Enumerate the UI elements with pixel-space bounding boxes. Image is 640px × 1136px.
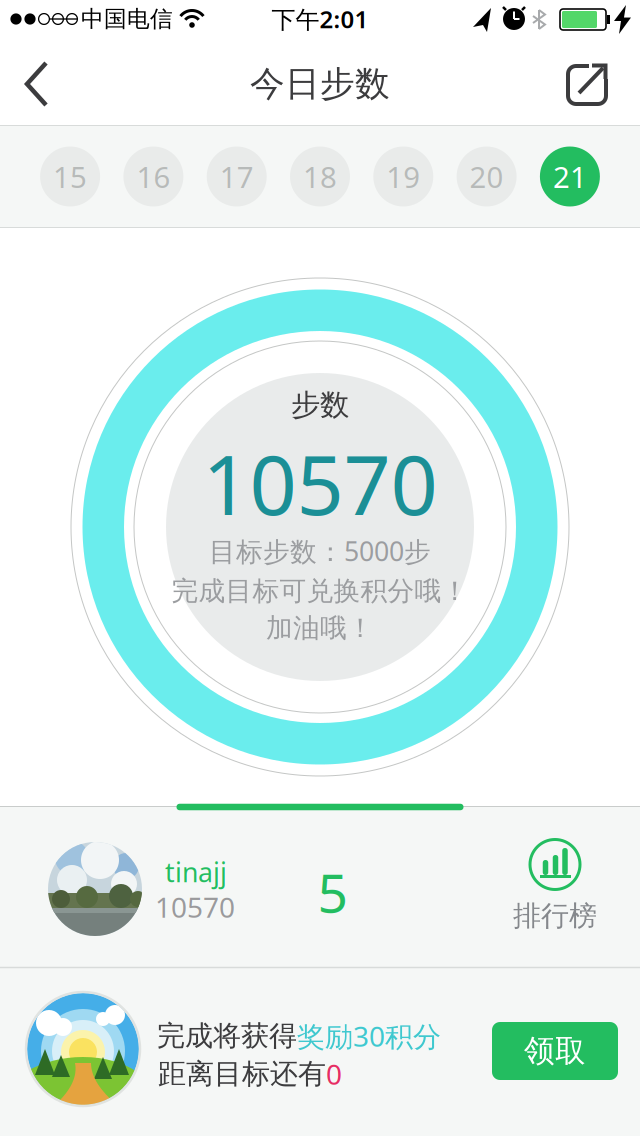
button[interactable]: Share <box>557 54 617 116</box>
staticText: 奖励30积分 <box>297 1017 441 1055</box>
staticText: 10570 <box>202 428 437 538</box>
staticText: 下午2:01 <box>271 3 368 35</box>
button[interactable]: Back <box>0 40 70 126</box>
staticText: 完成目标可兑换积分哦！ <box>171 575 468 607</box>
staticText: 完成将获得 <box>157 1019 297 1053</box>
staticText: 15 <box>53 157 87 196</box>
button[interactable]: 19 <box>373 146 433 206</box>
staticText: 今日步数 <box>250 63 390 105</box>
button[interactable]: 兑换积分 <box>176 804 463 810</box>
staticText: 19 <box>386 157 420 196</box>
button[interactable]: 18 <box>290 146 350 206</box>
staticText: 排行榜 <box>513 899 597 933</box>
staticText: 5 <box>317 857 348 927</box>
button[interactable]: 20 <box>457 146 517 206</box>
staticText: 中国电信 <box>81 5 173 33</box>
button[interactable]: 领取 <box>492 1022 618 1080</box>
staticText: tinajj <box>165 854 227 890</box>
staticText: 17 <box>220 157 254 196</box>
button[interactable]: 排行榜 <box>0 806 640 1136</box>
staticText: 16 <box>136 157 170 196</box>
button[interactable]: 16 <box>123 146 183 206</box>
staticText: 20 <box>470 157 504 196</box>
staticText: 21 <box>553 157 587 196</box>
button[interactable]: 21 <box>540 146 600 206</box>
staticText: 18 <box>303 157 337 196</box>
staticText: 步数 <box>291 387 349 423</box>
staticText: 领取 <box>524 1032 586 1070</box>
staticText: 0 <box>326 1055 342 1093</box>
staticText: 目标步数：5000步 <box>209 533 431 569</box>
button[interactable]: 15 <box>40 146 100 206</box>
button[interactable]: 17 <box>207 146 267 206</box>
staticText: 10570 <box>155 888 235 926</box>
staticText: 加油哦！ <box>266 612 374 644</box>
staticText: 距离目标还有 <box>158 1057 326 1091</box>
